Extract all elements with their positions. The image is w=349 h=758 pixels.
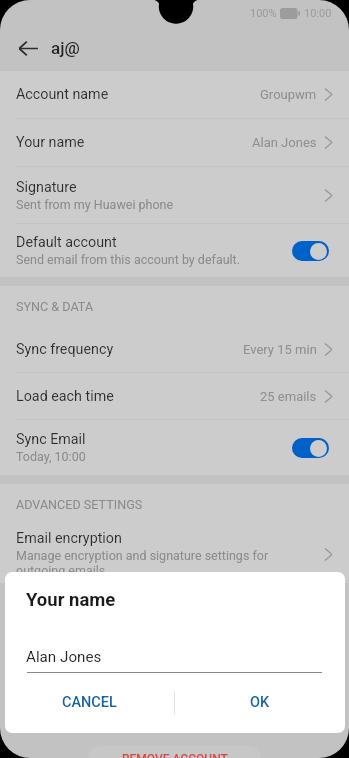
staticText: Email encryption <box>16 530 122 547</box>
button[interactable]: Signature <box>0 167 349 223</box>
staticText: Manage encryption and signature settings… <box>16 548 306 578</box>
button[interactable]: CANCEL <box>5 684 174 721</box>
button[interactable]: Email encryption <box>0 525 349 583</box>
staticText: 10:00 <box>304 7 332 20</box>
staticText: Every 15 min <box>243 342 317 357</box>
staticText: 100% <box>250 7 277 20</box>
staticText: REMOVE ACCOUNT <box>122 752 228 758</box>
staticText: Your name <box>16 134 85 151</box>
staticText: SYNC & DATA <box>16 299 94 314</box>
staticText: Account name <box>16 86 109 103</box>
staticText: Groupwm <box>260 87 317 102</box>
button[interactable]: Your name <box>0 119 349 166</box>
button[interactable]: Sync frequency <box>0 327 349 372</box>
staticText: ADVANCED SETTINGS <box>16 497 143 512</box>
staticText: Alan Jones <box>252 135 317 150</box>
staticText: CANCEL <box>62 694 117 711</box>
button[interactable]: Default account <box>0 224 349 277</box>
staticText: 25 emails <box>260 389 317 404</box>
button[interactable]: Load each time <box>0 373 349 419</box>
staticText: Today, 10:00 <box>16 449 86 464</box>
staticText: Default account <box>16 234 117 251</box>
staticText: OK <box>250 694 270 711</box>
staticText: Load each time <box>16 388 114 405</box>
button[interactable]: REMOVE ACCOUNT <box>88 746 261 758</box>
button[interactable]: Toggle <box>292 241 329 261</box>
button[interactable]: Toggle <box>292 438 329 458</box>
button[interactable]: Back <box>8 28 48 68</box>
staticText: Send email from this account by default. <box>16 252 240 267</box>
staticText: Signature <box>16 179 77 196</box>
button[interactable]: Sync Email <box>0 420 349 475</box>
button[interactable]: Account name <box>0 71 349 118</box>
staticText: Sync Email <box>16 431 86 448</box>
staticText: Your name <box>26 589 116 611</box>
staticText: Sync frequency <box>16 341 114 358</box>
button[interactable]: OK <box>175 684 345 721</box>
staticText: aj@ <box>51 38 80 58</box>
staticText: Alan Jones <box>26 648 102 666</box>
staticText: Sent from my Huawei phone <box>16 197 174 212</box>
